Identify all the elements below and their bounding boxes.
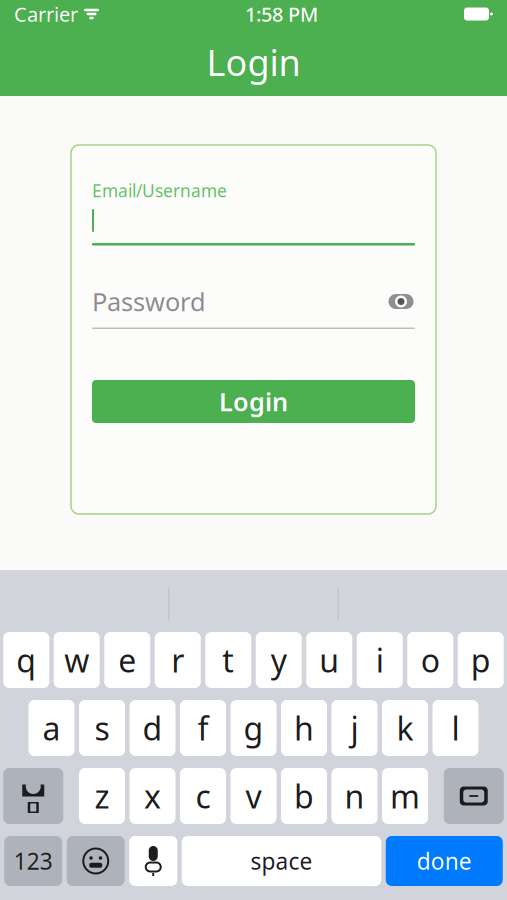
- staticText: Password: [92, 285, 206, 318]
- button[interactable]: g: [230, 700, 276, 756]
- staticText: i: [376, 639, 384, 681]
- button[interactable]: a: [28, 700, 74, 756]
- staticText: t: [222, 639, 234, 681]
- button[interactable]: r: [155, 632, 201, 688]
- button[interactable]: o: [407, 632, 453, 688]
- button[interactable]: Dictation: [129, 836, 177, 886]
- button[interactable]: m: [382, 768, 428, 824]
- button[interactable]: l: [432, 700, 478, 756]
- button[interactable]: y: [256, 632, 302, 688]
- button[interactable]: 123: [4, 836, 62, 886]
- staticText: z: [94, 775, 109, 817]
- staticText: space: [250, 846, 312, 876]
- button[interactable]: b: [281, 768, 327, 824]
- staticText: w: [64, 639, 89, 681]
- button[interactable]: n: [331, 768, 377, 824]
- staticText: k: [396, 707, 413, 749]
- button[interactable]: x: [129, 768, 175, 824]
- staticText: f: [197, 707, 208, 749]
- button[interactable]: t: [205, 632, 251, 688]
- button[interactable]: d: [129, 700, 175, 756]
- staticText: Email/Username: [92, 179, 227, 202]
- button[interactable]: Delete: [444, 768, 504, 824]
- button[interactable]: v: [230, 768, 276, 824]
- staticText: r: [171, 639, 184, 681]
- button[interactable]: s: [79, 700, 125, 756]
- button[interactable]: Emoji: [67, 836, 125, 886]
- staticText: 1:58 PM: [245, 1, 318, 27]
- staticText: 123: [14, 846, 53, 876]
- button[interactable]: f: [180, 700, 226, 756]
- button[interactable]: h: [281, 700, 327, 756]
- staticText: h: [294, 707, 314, 749]
- staticText: Login: [219, 385, 288, 418]
- staticText: a: [42, 707, 60, 749]
- button[interactable]: Password: [92, 284, 415, 318]
- staticText: y: [271, 639, 287, 681]
- button[interactable]: q: [3, 632, 49, 688]
- button[interactable]: space: [182, 836, 381, 886]
- staticText: u: [319, 639, 339, 681]
- button[interactable]: j: [331, 700, 377, 756]
- staticText: g: [243, 707, 263, 749]
- staticText: m: [390, 775, 420, 817]
- staticText: b: [294, 775, 314, 817]
- staticText: o: [421, 639, 440, 681]
- button[interactable]: i: [357, 632, 403, 688]
- staticText: v: [245, 775, 261, 817]
- staticText: Carrier: [14, 1, 78, 27]
- button[interactable]: z: [79, 768, 125, 824]
- button[interactable]: e: [104, 632, 150, 688]
- staticText: done: [417, 846, 472, 876]
- button[interactable]: c: [180, 768, 226, 824]
- button[interactable]: done: [386, 836, 503, 886]
- button[interactable]: Shift: [3, 768, 63, 824]
- staticText: p: [471, 639, 491, 681]
- button[interactable]: u: [306, 632, 352, 688]
- staticText: l: [451, 707, 459, 749]
- staticText: s: [94, 707, 109, 749]
- button[interactable]: k: [382, 700, 428, 756]
- staticText: c: [195, 775, 210, 817]
- staticText: n: [344, 775, 364, 817]
- staticText: d: [142, 707, 162, 749]
- button[interactable]: p: [458, 632, 504, 688]
- staticText: Login: [206, 38, 300, 86]
- button[interactable]: Login: [92, 380, 415, 423]
- button[interactable]: w: [54, 632, 100, 688]
- staticText: j: [350, 707, 358, 749]
- staticText: q: [16, 639, 36, 681]
- staticText: x: [144, 775, 161, 817]
- staticText: e: [118, 639, 136, 681]
